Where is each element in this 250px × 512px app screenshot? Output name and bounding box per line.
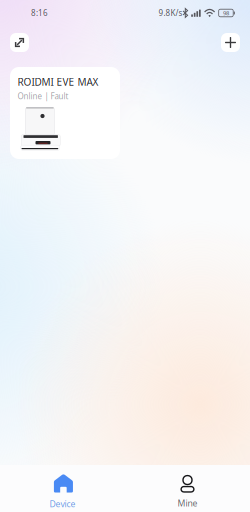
button[interactable]: Add device — [221, 33, 240, 52]
staticText: 9.8K/s — [159, 8, 183, 18]
staticText: ROIDMI EVE MAX — [17, 75, 98, 89]
button[interactable]: Scan — [10, 33, 29, 52]
button[interactable]: Mine — [125, 466, 250, 512]
staticText: Online | Fault — [17, 91, 68, 101]
staticText: Mine — [177, 497, 197, 509]
staticText: Device — [49, 498, 75, 510]
button[interactable]: ROIDMI EVE MAX — [10, 67, 120, 159]
staticText: 98 — [223, 9, 229, 17]
button[interactable]: Device — [0, 465, 125, 512]
staticText: 8:16 — [31, 8, 48, 18]
